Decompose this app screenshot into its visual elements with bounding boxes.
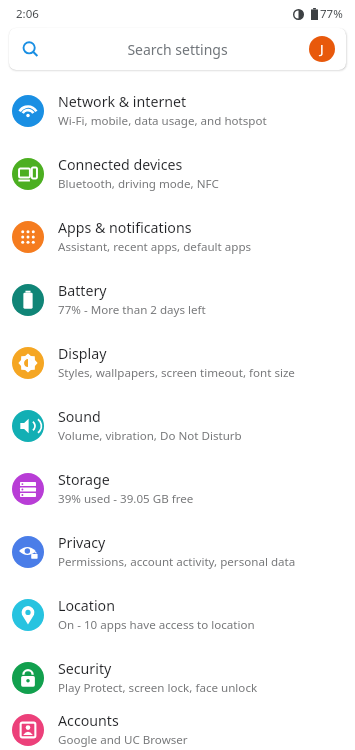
button[interactable]: Accounts [0,709,355,750]
button[interactable]: Connected devices [0,142,355,205]
staticText: Play Protect, screen lock, face unlock [58,680,258,696]
staticText: Apps & notifications [58,218,192,237]
staticText: Battery [58,281,107,300]
staticText: Display [58,344,107,363]
button[interactable]: Network & internet [0,79,355,142]
staticText: Permissions, account activity, personal … [58,554,296,570]
staticText: Location [58,596,115,615]
staticText: J [320,40,324,58]
staticText: Assistant, recent apps, default apps [58,239,252,255]
staticText: 77% - More than 2 days left [58,302,206,318]
staticText: 2:06 [16,6,39,22]
button[interactable]: Display [0,331,355,394]
staticText: Connected devices [58,155,183,174]
button[interactable]: Account [309,36,335,62]
staticText: On - 10 apps have access to location [58,617,255,633]
other: Search [22,41,39,58]
button[interactable]: Search [9,28,346,70]
button[interactable]: Sound [0,394,355,457]
button[interactable]: Privacy [0,520,355,583]
button[interactable]: Location [0,583,355,646]
staticText: Bluetooth, driving mode, NFC [58,176,219,192]
staticText: Network & internet [58,92,187,111]
staticText: Search settings [127,40,228,59]
staticText: Volume, vibration, Do Not Disturb [58,428,242,444]
staticText: Accounts [58,711,119,730]
button[interactable]: Storage [0,457,355,520]
staticText: Privacy [58,533,106,552]
button[interactable]: Battery [0,268,355,331]
staticText: 39% used - 39.05 GB free [58,491,194,507]
staticText: Storage [58,470,110,489]
staticText: 77% [320,6,343,22]
staticText: Wi-Fi, mobile, data usage, and hotspot [58,113,267,129]
button[interactable]: Apps & notifications [0,205,355,268]
staticText: Google and UC Browser [58,732,188,748]
staticText: Styles, wallpapers, screen timeout, font… [58,365,295,381]
staticText: Security [58,659,112,678]
staticText: Sound [58,407,101,426]
button[interactable]: Security [0,646,355,709]
